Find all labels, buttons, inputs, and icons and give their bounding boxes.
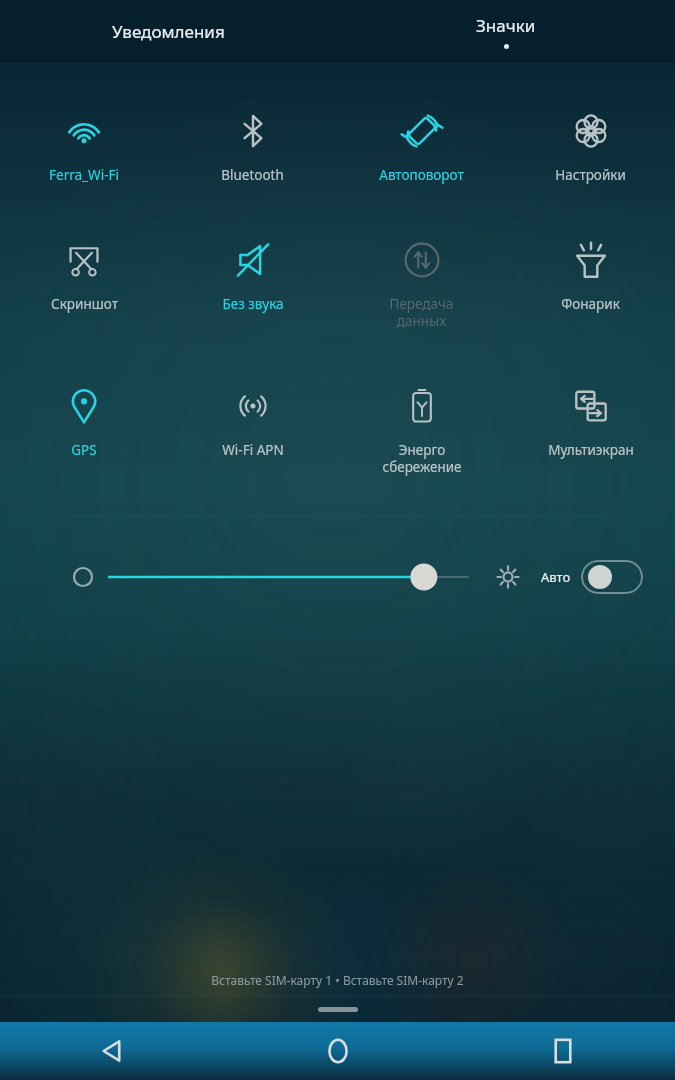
staticText: Мультиэкран: [548, 441, 634, 459]
button[interactable]: Автоповорот: [337, 110, 506, 184]
staticText: Wi-Fi APN: [222, 441, 284, 459]
button[interactable]: [108, 560, 469, 594]
button[interactable]: Bluetooth: [168, 110, 337, 184]
button[interactable]: Drag handle: [0, 996, 675, 1022]
button[interactable]: Скриншот: [0, 239, 168, 313]
staticText: Передача данных: [389, 295, 454, 330]
staticText: Настройки: [555, 166, 626, 184]
staticText: Значки: [476, 14, 536, 37]
button[interactable]: Auto brightness: [581, 560, 643, 594]
staticText: Фонарик: [561, 295, 620, 313]
staticText: Вставьте SIM-карту 1 • Вставьте SIM-карт…: [0, 972, 675, 988]
button[interactable]: Ferra_Wi-Fi: [0, 110, 168, 184]
button[interactable]: Передача данных: [337, 239, 506, 330]
button[interactable]: Уведомления: [0, 0, 337, 63]
button[interactable]: Back: [0, 1022, 225, 1080]
button[interactable]: Фонарик: [506, 239, 675, 313]
button[interactable]: Brightness: [491, 560, 525, 594]
staticText: Энерго сбережение: [382, 441, 462, 476]
staticText: Ferra_Wi-Fi: [49, 166, 119, 184]
button[interactable]: Wi-Fi APN: [168, 385, 337, 459]
staticText: Bluetooth: [221, 166, 284, 184]
staticText: Скриншот: [51, 295, 118, 313]
button[interactable]: Мультиэкран: [506, 385, 675, 459]
staticText: Без звука: [222, 295, 284, 313]
staticText: Авто: [541, 568, 571, 586]
button[interactable]: Recents: [450, 1022, 675, 1080]
button[interactable]: GPS: [0, 385, 168, 459]
other: Minimum brightness: [72, 566, 94, 588]
button[interactable]: Значки: [337, 0, 675, 63]
staticText: Автоповорот: [379, 166, 464, 184]
button[interactable]: Без звука: [168, 239, 337, 313]
button[interactable]: Home: [225, 1022, 450, 1080]
staticText: Уведомления: [112, 20, 225, 43]
button[interactable]: Энерго сбережение: [337, 385, 506, 476]
button[interactable]: Настройки: [506, 110, 675, 184]
staticText: GPS: [71, 441, 97, 459]
